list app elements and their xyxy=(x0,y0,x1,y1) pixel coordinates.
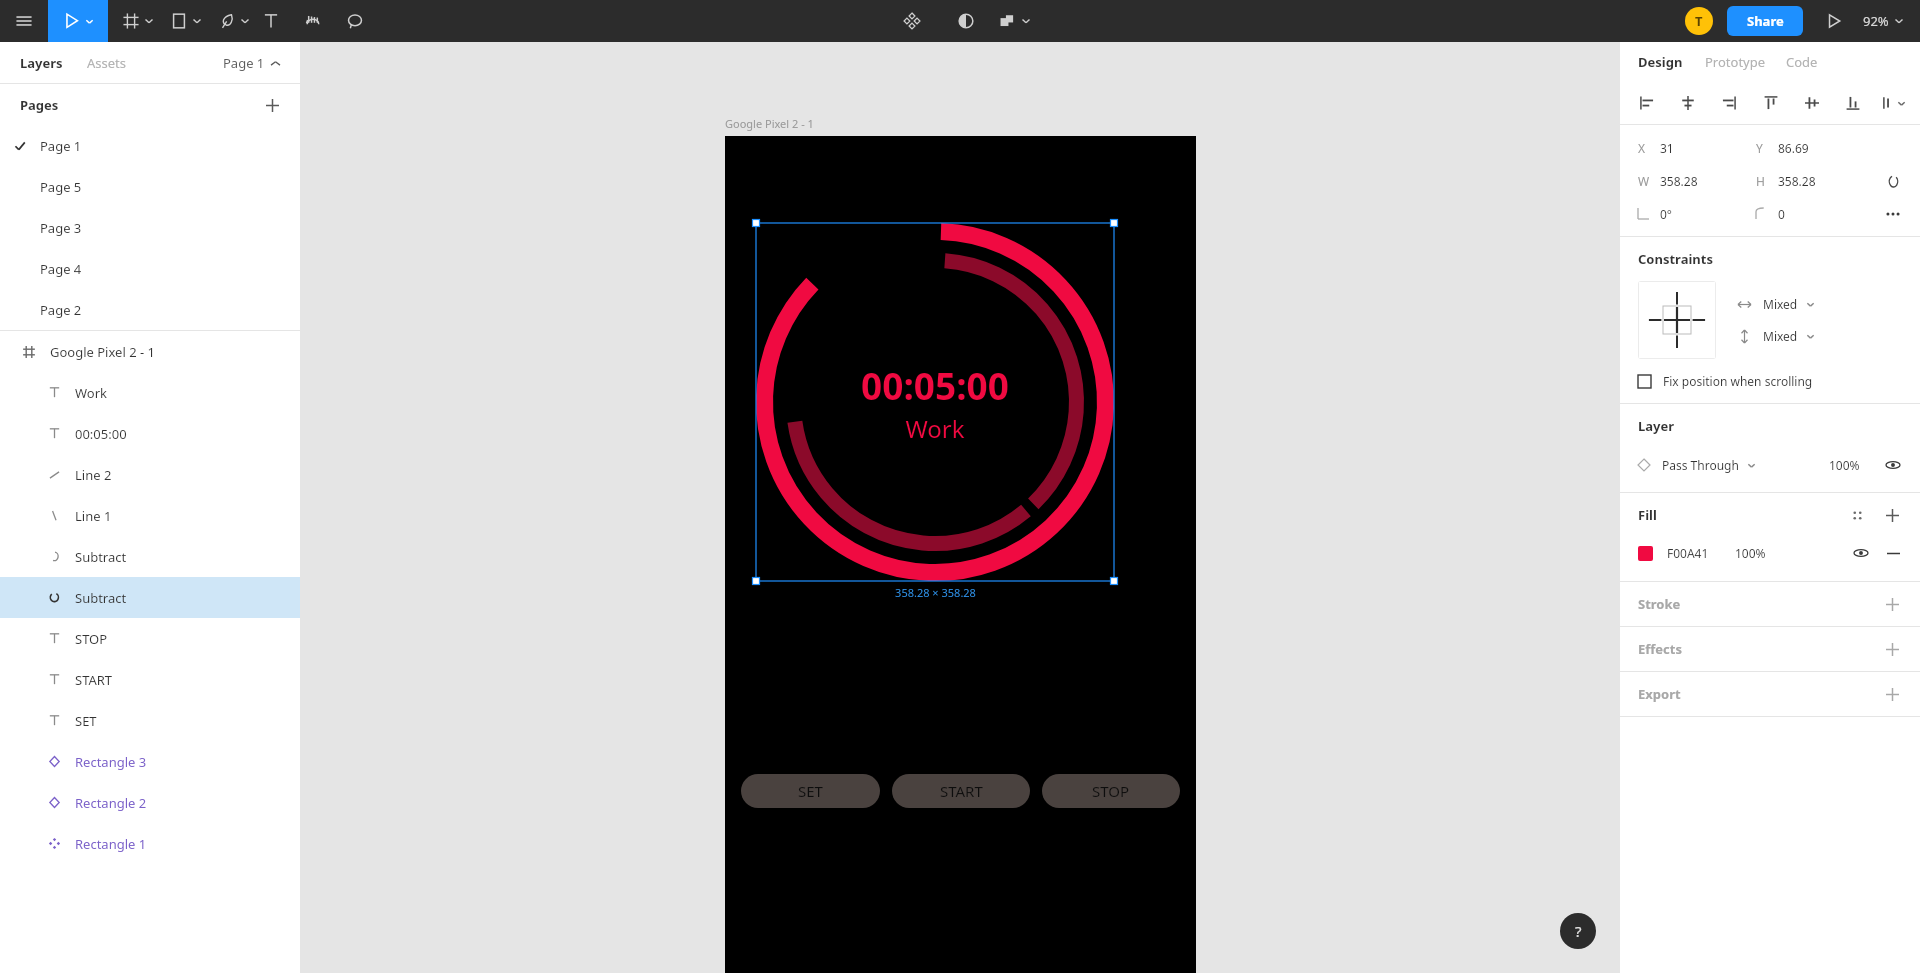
staticText: Mixed xyxy=(1763,328,1798,344)
button[interactable]: 358.28 xyxy=(1778,173,1858,189)
button[interactable]: Page 1 xyxy=(223,54,280,72)
button[interactable]: Subtract xyxy=(0,577,300,618)
button[interactable]: Pen tool xyxy=(218,0,250,42)
staticText: Rectangle 1 xyxy=(75,835,147,853)
button[interactable]: Page 1 xyxy=(0,125,300,166)
button[interactable]: Present xyxy=(1819,6,1849,36)
button[interactable]: Rectangle 1 xyxy=(0,823,300,864)
button[interactable]: SET xyxy=(0,700,300,741)
staticText: Export xyxy=(1638,685,1681,703)
button[interactable]: START xyxy=(0,659,300,700)
button[interactable]: Add Fill xyxy=(1882,505,1902,525)
button[interactable]: More options xyxy=(1884,205,1902,223)
button[interactable]: Align 0 xyxy=(1634,90,1660,116)
staticText: Constraints xyxy=(1638,250,1713,268)
button[interactable]: START xyxy=(892,774,1030,808)
button[interactable]: STOP xyxy=(1042,774,1180,808)
button[interactable]: Toggle fill visibility xyxy=(1852,544,1870,562)
button[interactable]: Page 3 xyxy=(0,207,300,248)
button[interactable]: Mixed xyxy=(1738,296,1815,312)
button[interactable]: F00A41 xyxy=(1667,545,1709,561)
button[interactable]: 358.28 xyxy=(1660,173,1756,189)
button[interactable]: Remove fill xyxy=(1884,544,1902,562)
button[interactable]: Pass Through xyxy=(1662,457,1756,473)
button[interactable]: Page 4 xyxy=(0,248,300,289)
staticText: W xyxy=(1638,173,1650,189)
staticText: Code xyxy=(1786,53,1818,71)
button[interactable]: Code xyxy=(1786,53,1818,71)
button[interactable]: Page 2 xyxy=(0,289,300,330)
button[interactable]: Toggle layer visibility xyxy=(1884,456,1902,474)
button[interactable]: 100% xyxy=(1829,457,1860,473)
button[interactable]: Add Effects xyxy=(1882,639,1902,659)
button[interactable]: 0 xyxy=(1778,206,1858,222)
button[interactable]: Mixed xyxy=(1738,328,1815,344)
button[interactable]: Create component xyxy=(890,0,934,42)
staticText: 100% xyxy=(1829,457,1860,473)
button[interactable]: Add Stroke xyxy=(1882,594,1902,614)
button[interactable]: Hand tool xyxy=(292,0,334,42)
button[interactable]: Shape tool xyxy=(170,0,202,42)
staticText: F00A41 xyxy=(1667,545,1709,561)
staticText: X xyxy=(1638,140,1646,156)
button[interactable]: Constraints widget xyxy=(1638,281,1716,359)
button[interactable]: Lock ratio xyxy=(1884,172,1902,190)
button[interactable]: Mask xyxy=(944,0,988,42)
staticText: START xyxy=(940,781,983,801)
button[interactable]: Assets xyxy=(87,54,127,72)
button[interactable]: 92% xyxy=(1863,12,1904,30)
button[interactable]: 00:05:00 xyxy=(0,413,300,454)
button[interactable]: Share xyxy=(1727,6,1803,36)
staticText: Subtract xyxy=(75,589,127,607)
staticText: 358.28 xyxy=(1660,173,1698,189)
button[interactable]: Align 5 xyxy=(1840,90,1866,116)
button[interactable]: 100% xyxy=(1735,545,1766,561)
staticText: Fix position when scrolling xyxy=(1663,373,1813,389)
button[interactable]: Subtract xyxy=(0,536,300,577)
button[interactable]: Fill options xyxy=(1848,506,1866,524)
staticText: 358.28 × 358.28 xyxy=(895,585,976,600)
button[interactable]: STOP xyxy=(0,618,300,659)
button[interactable]: Text tool xyxy=(250,0,292,42)
staticText: ? xyxy=(1575,921,1582,941)
button[interactable]: Fill colour F00A41 xyxy=(1638,546,1653,561)
button[interactable]: Google Pixel 2 - 1 xyxy=(0,331,300,372)
button[interactable]: Rectangle 3 xyxy=(0,741,300,782)
button[interactable]: Comment xyxy=(334,0,376,42)
staticText: Google Pixel 2 - 1 xyxy=(725,116,814,131)
button[interactable]: Distribute xyxy=(1881,95,1906,111)
staticText: SET xyxy=(798,781,823,801)
button[interactable]: 86.69 xyxy=(1778,140,1858,156)
button[interactable]: Fix position when scrolling xyxy=(1638,359,1902,403)
button[interactable]: Add Export xyxy=(1882,684,1902,704)
button[interactable]: Prototype xyxy=(1705,53,1766,71)
button[interactable]: Page 5 xyxy=(0,166,300,207)
button[interactable]: Align 1 xyxy=(1675,90,1701,116)
button[interactable]: Work xyxy=(0,372,300,413)
staticText: Rectangle 2 xyxy=(75,794,147,812)
button[interactable]: SET xyxy=(741,774,880,808)
button[interactable]: Line 2 xyxy=(0,454,300,495)
staticText: Page 1 xyxy=(40,137,82,155)
button[interactable]: Design xyxy=(1638,53,1683,71)
button[interactable]: Boolean groups xyxy=(998,0,1031,42)
button[interactable]: Account xyxy=(1685,7,1713,35)
button[interactable]: Frame tool xyxy=(122,0,154,42)
staticText: SET xyxy=(75,712,97,730)
button[interactable]: Align 4 xyxy=(1799,90,1825,116)
button[interactable]: Line 1 xyxy=(0,495,300,536)
button[interactable]: Rectangle 2 xyxy=(0,782,300,823)
staticText: 100% xyxy=(1735,545,1766,561)
staticText: Work xyxy=(75,384,108,402)
button[interactable]: Move tool xyxy=(48,0,108,42)
button[interactable]: Help xyxy=(1560,913,1596,949)
staticText: 31 xyxy=(1660,140,1674,156)
button[interactable]: Align 3 xyxy=(1758,90,1784,116)
button[interactable]: Layers xyxy=(20,54,63,72)
button[interactable]: Align 2 xyxy=(1716,90,1742,116)
button[interactable]: Main menu xyxy=(0,0,48,42)
button[interactable]: 0° xyxy=(1660,206,1756,222)
button[interactable]: Add page xyxy=(262,95,282,115)
staticText: Pass Through xyxy=(1662,457,1739,473)
button[interactable]: 31 xyxy=(1660,140,1756,156)
